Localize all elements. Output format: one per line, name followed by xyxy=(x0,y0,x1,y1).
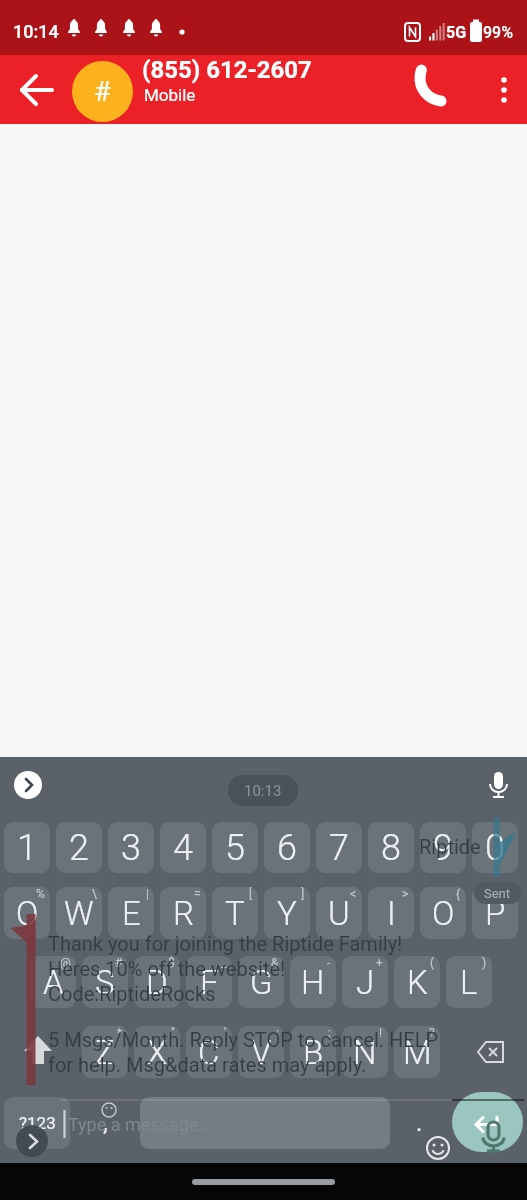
staticText: = xyxy=(194,887,201,901)
button[interactable]: W xyxy=(56,887,102,939)
staticText: < xyxy=(350,887,357,901)
staticText: B xyxy=(303,1033,324,1072)
button[interactable]: 2 xyxy=(56,822,102,873)
button[interactable]: 7 xyxy=(316,822,362,873)
button[interactable]: A xyxy=(30,956,76,1008)
button[interactable]: C xyxy=(186,1026,232,1078)
staticText: } xyxy=(508,887,513,901)
staticText: - xyxy=(327,956,331,970)
staticText: 9 xyxy=(433,827,453,869)
button[interactable]: T xyxy=(212,887,258,939)
staticText: D xyxy=(146,963,168,1002)
staticText: H xyxy=(301,963,325,1002)
button[interactable]: 8 xyxy=(368,822,414,873)
staticText: A xyxy=(43,963,64,1002)
staticText: , xyxy=(103,1109,108,1137)
button[interactable] xyxy=(14,771,42,799)
button[interactable]: 4 xyxy=(160,822,206,873)
button[interactable]: 5 xyxy=(212,822,258,873)
staticText: Heres 10% off the website! xyxy=(48,957,286,980)
staticText: L xyxy=(460,963,478,1002)
button[interactable]: 6 xyxy=(264,822,310,873)
button[interactable]: P xyxy=(472,887,518,939)
staticText: 4 xyxy=(173,827,193,869)
button[interactable]: U xyxy=(316,887,362,939)
button[interactable]: Y xyxy=(264,887,310,939)
button[interactable]: E xyxy=(108,887,154,939)
staticText: _ xyxy=(221,956,227,970)
staticText: 3 xyxy=(121,827,141,869)
button[interactable]: R xyxy=(160,887,206,939)
staticText: { xyxy=(456,887,461,901)
button[interactable] xyxy=(412,65,462,115)
staticText: P xyxy=(485,894,506,933)
button[interactable]: . xyxy=(396,1097,442,1149)
staticText: ?123 xyxy=(19,1113,56,1133)
staticText: 10:14 xyxy=(13,21,59,42)
staticText: $ xyxy=(168,956,175,970)
staticText: [ xyxy=(249,887,253,901)
button[interactable] xyxy=(456,1026,522,1078)
staticText: 10:13 xyxy=(244,782,282,800)
staticText: \ xyxy=(92,887,97,901)
staticText: Y xyxy=(277,894,297,933)
button[interactable]: D xyxy=(134,956,180,1008)
button[interactable]: Z xyxy=(82,1026,128,1078)
button[interactable]: , xyxy=(82,1097,128,1149)
staticText: > xyxy=(402,887,409,901)
button[interactable]: 0 xyxy=(472,822,518,873)
button[interactable]: H xyxy=(290,956,336,1008)
button[interactable]: Q xyxy=(4,887,50,939)
staticText: E xyxy=(122,894,141,933)
staticText: I xyxy=(387,894,396,933)
button[interactable] xyxy=(12,65,62,115)
button[interactable] xyxy=(140,1097,390,1149)
staticText: W xyxy=(64,894,94,933)
staticText: # xyxy=(115,956,123,970)
staticText: Q xyxy=(16,894,39,933)
button[interactable]: K xyxy=(394,956,440,1008)
staticText: . xyxy=(416,1109,423,1137)
button[interactable]: N xyxy=(342,1026,388,1078)
staticText: 7 xyxy=(329,827,349,869)
staticText: Type a message... xyxy=(68,1114,213,1135)
button[interactable]: 1 xyxy=(4,822,50,873)
button[interactable]: # xyxy=(72,61,133,122)
button[interactable]: B xyxy=(290,1026,336,1078)
staticText: T xyxy=(225,894,245,933)
staticText: ] xyxy=(301,887,305,901)
staticText: ( xyxy=(430,956,435,970)
staticText: F xyxy=(200,963,219,1002)
staticText: G xyxy=(250,963,273,1002)
staticText: O xyxy=(432,894,455,933)
button[interactable]: X xyxy=(134,1026,180,1078)
button[interactable]: S xyxy=(82,956,128,1008)
staticText: Riptide xyxy=(419,835,481,858)
staticText: M xyxy=(403,1033,432,1072)
button[interactable]: 3 xyxy=(108,822,154,873)
button[interactable]: V xyxy=(238,1026,284,1078)
button[interactable]: J xyxy=(342,956,388,1008)
staticText: # xyxy=(94,76,111,108)
button[interactable]: F xyxy=(186,956,232,1008)
button[interactable]: 9 xyxy=(420,822,466,873)
staticText: ' xyxy=(224,1026,227,1040)
staticText: ? xyxy=(429,1026,435,1040)
button[interactable] xyxy=(452,1092,523,1152)
button[interactable]: M xyxy=(394,1026,440,1078)
staticText: ! xyxy=(379,1026,383,1040)
button[interactable]: ?123 xyxy=(4,1097,70,1149)
button[interactable]: G xyxy=(238,956,284,1008)
button[interactable] xyxy=(484,70,524,110)
staticText: + xyxy=(376,956,383,970)
staticText: R xyxy=(173,894,194,933)
staticText: S xyxy=(95,963,115,1002)
button[interactable] xyxy=(4,1026,72,1078)
staticText: U xyxy=(328,894,350,933)
button[interactable]: I xyxy=(368,887,414,939)
staticText: 1 xyxy=(17,827,37,869)
staticText: ) xyxy=(482,956,487,970)
staticText: (855) 612-2607 xyxy=(142,56,312,84)
button[interactable]: L xyxy=(446,956,492,1008)
button[interactable]: O xyxy=(420,887,466,939)
